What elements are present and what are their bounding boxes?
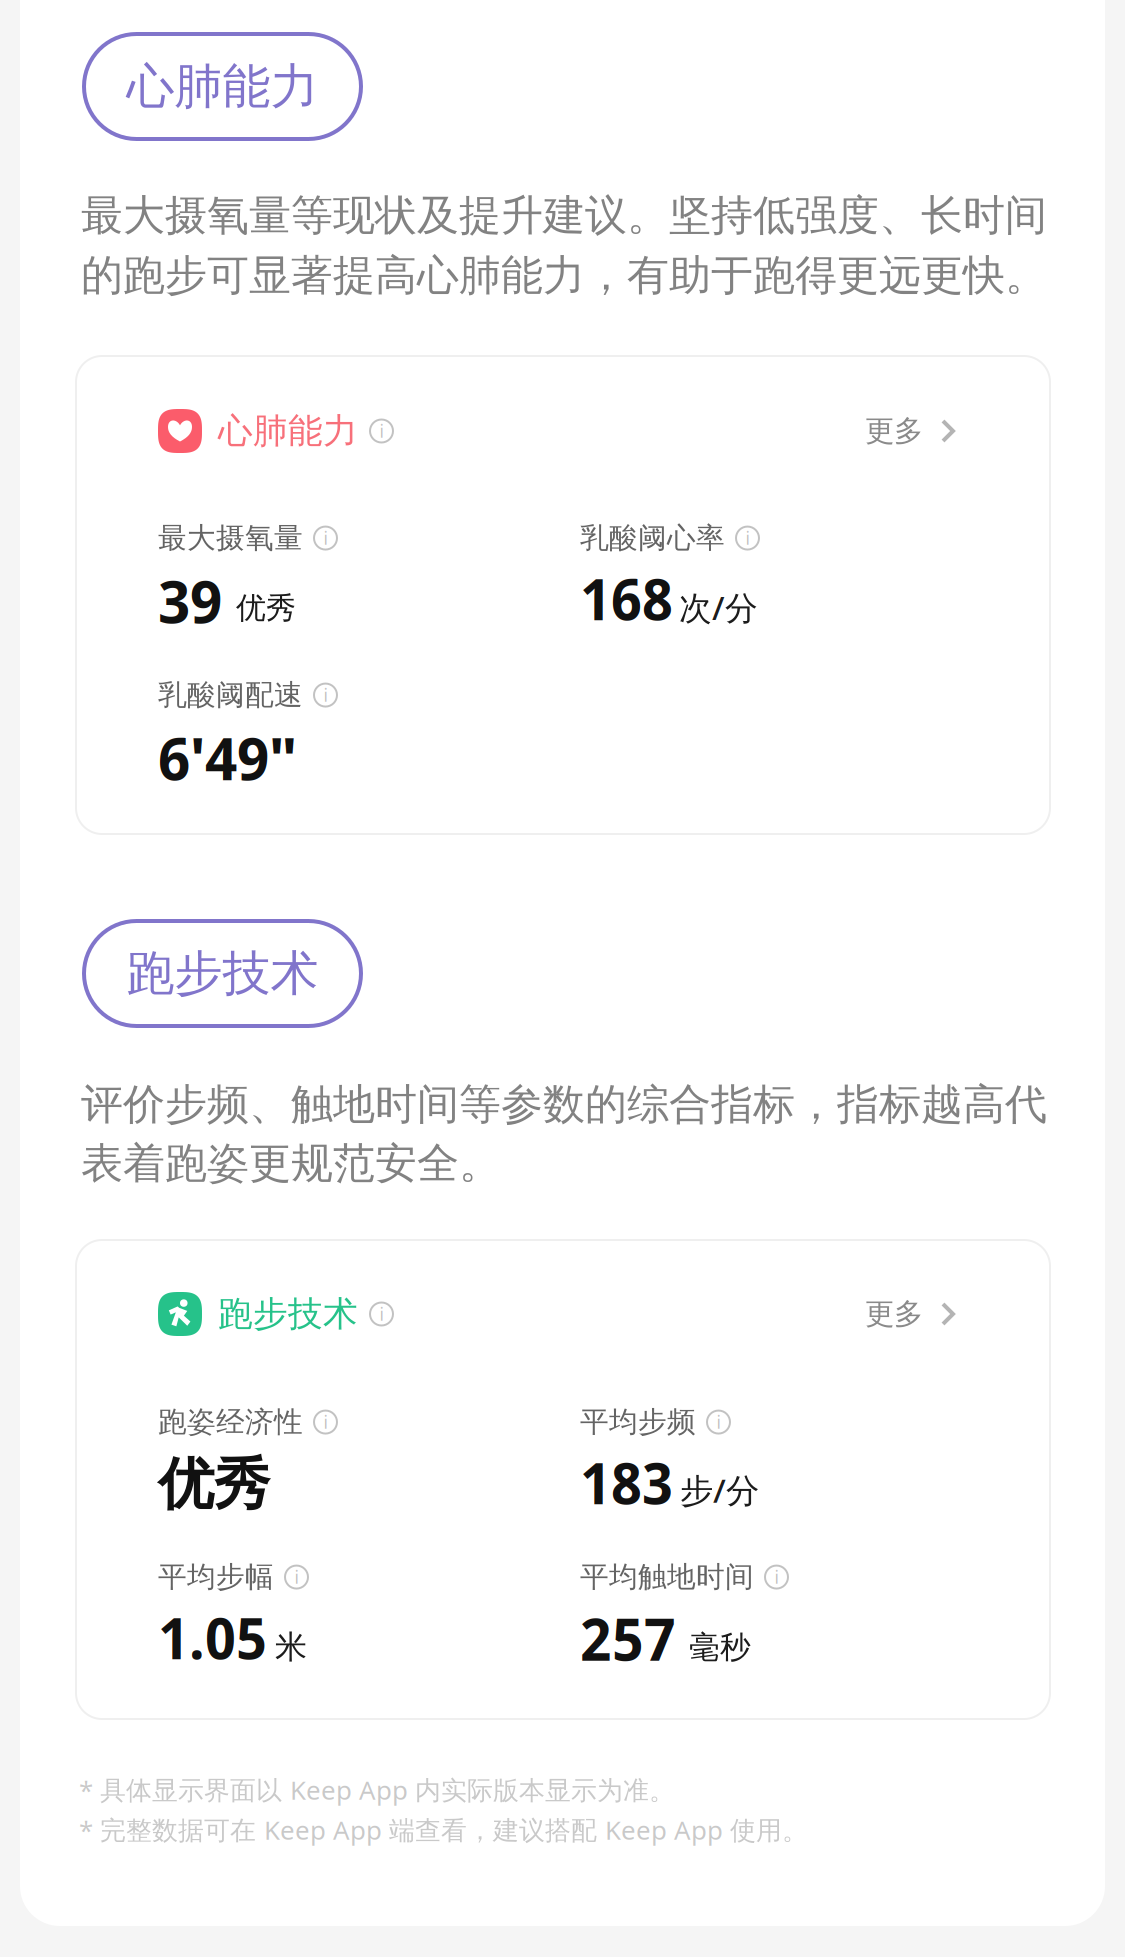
staticText: 168 xyxy=(580,559,673,637)
staticText: 评价步频、触地时间等参数的综合指标，指标越高代 xyxy=(81,1078,1047,1131)
staticText: i xyxy=(323,1410,327,1434)
staticText: 心肺能力 xyxy=(126,56,318,117)
staticText: 表着跑姿更规范安全。 xyxy=(81,1137,501,1190)
staticText: 257 xyxy=(580,1598,676,1678)
button[interactable]: 跑步技术 xyxy=(84,921,361,1026)
staticText: * 完整数据可在 Keep App 端查看，建议搭配 Keep App 使用。 xyxy=(79,1812,808,1847)
staticText: 毫秒 xyxy=(689,1628,751,1667)
staticText: * 具体显示界面以 Keep App 内实际版本显示为准。 xyxy=(79,1772,675,1807)
button[interactable]: 更多 心肺能力 xyxy=(865,409,955,453)
staticText: 心肺能力 xyxy=(218,409,358,453)
staticText: i xyxy=(323,683,327,707)
staticText: 平均触地时间 xyxy=(580,1559,754,1595)
staticText: 更多 xyxy=(865,412,923,449)
staticText: 最大摄氧量等现状及提升建议。坚持低强度、长时间 xyxy=(81,189,1047,242)
staticText: 米 xyxy=(275,1627,307,1667)
staticText: 6'49" xyxy=(158,716,297,798)
staticText: i xyxy=(379,1302,383,1326)
staticText: 最大摄氧量 xyxy=(158,520,303,556)
staticText: i xyxy=(294,1565,298,1589)
button[interactable]: 更多 跑步技术 xyxy=(865,1292,955,1336)
staticText: 步/分 xyxy=(680,1467,759,1512)
staticText: i xyxy=(774,1565,778,1589)
staticText: 优秀 xyxy=(158,1449,270,1519)
staticText: 跑步技术 xyxy=(218,1292,358,1336)
staticText: 平均步频 xyxy=(580,1404,696,1440)
staticText: i xyxy=(745,526,749,550)
staticText: i xyxy=(716,1410,720,1434)
staticText: 次/分 xyxy=(679,585,758,629)
staticText: i xyxy=(379,419,383,443)
staticText: 的跑步可显著提高心肺能力，有助于跑得更远更快。 xyxy=(81,249,1047,302)
staticText: 乳酸阈心率 xyxy=(580,520,725,556)
staticText: 1.05 xyxy=(158,1598,267,1676)
button[interactable]: 心肺能力 xyxy=(84,34,361,139)
staticText: 183 xyxy=(580,1443,673,1521)
staticText: 平均步幅 xyxy=(158,1559,274,1595)
staticText: i xyxy=(323,526,327,550)
staticText: 优秀 xyxy=(236,589,296,627)
staticText: 跑姿经济性 xyxy=(158,1404,303,1440)
staticText: 39 xyxy=(158,559,222,641)
staticText: 更多 xyxy=(865,1295,923,1332)
staticText: 跑步技术 xyxy=(126,943,318,1004)
staticText: 乳酸阈配速 xyxy=(158,677,303,713)
